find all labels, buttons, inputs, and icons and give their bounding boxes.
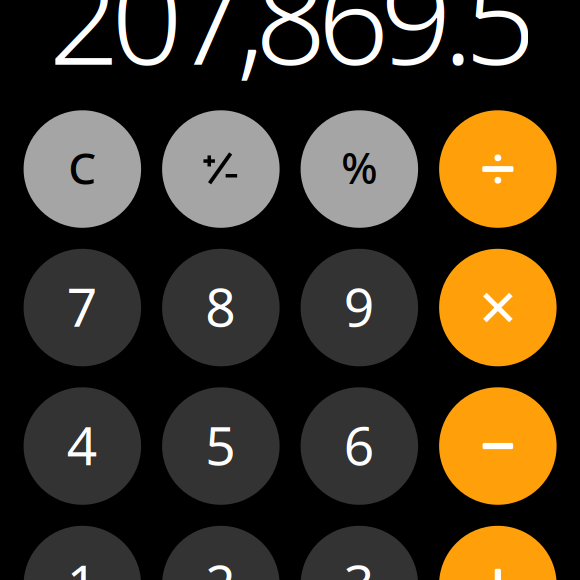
staticText: 6 xyxy=(344,409,375,480)
button[interactable]: 7 xyxy=(24,249,141,366)
button[interactable]: C xyxy=(24,110,141,228)
button[interactable]: Divide xyxy=(439,110,557,228)
staticText: 5 xyxy=(205,409,236,480)
button[interactable]: 3 xyxy=(301,526,418,580)
staticText: 2 xyxy=(205,548,236,580)
button[interactable]: Multiply xyxy=(439,249,557,366)
staticText: % xyxy=(341,139,377,196)
button[interactable]: % xyxy=(301,110,418,228)
button[interactable]: Toggle sign xyxy=(162,110,280,228)
staticText: 207,869.5 xyxy=(49,0,536,99)
staticText: 4 xyxy=(67,409,98,480)
button[interactable]: Subtract xyxy=(439,387,557,505)
button[interactable]: 4 xyxy=(24,387,141,505)
staticText: 3 xyxy=(344,548,375,580)
button[interactable]: 2 xyxy=(162,526,280,580)
button[interactable]: 8 xyxy=(162,249,280,366)
staticText: 1 xyxy=(67,548,98,580)
staticText: 8 xyxy=(205,271,236,341)
button[interactable]: 1 xyxy=(24,526,141,580)
staticText: 9 xyxy=(344,271,375,341)
button[interactable]: 9 xyxy=(301,249,418,366)
button[interactable]: 5 xyxy=(162,387,280,505)
button[interactable]: Add xyxy=(439,526,557,580)
button[interactable]: 6 xyxy=(301,387,418,505)
staticText: 7 xyxy=(67,271,98,341)
staticText: C xyxy=(68,138,96,197)
